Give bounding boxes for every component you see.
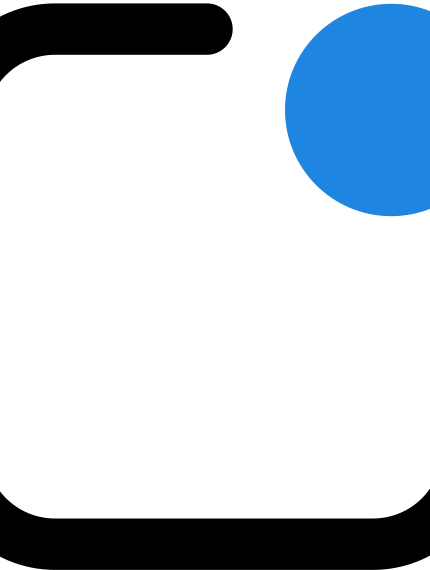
button[interactable]: Inbox, 1 new item — [0, 0, 430, 570]
